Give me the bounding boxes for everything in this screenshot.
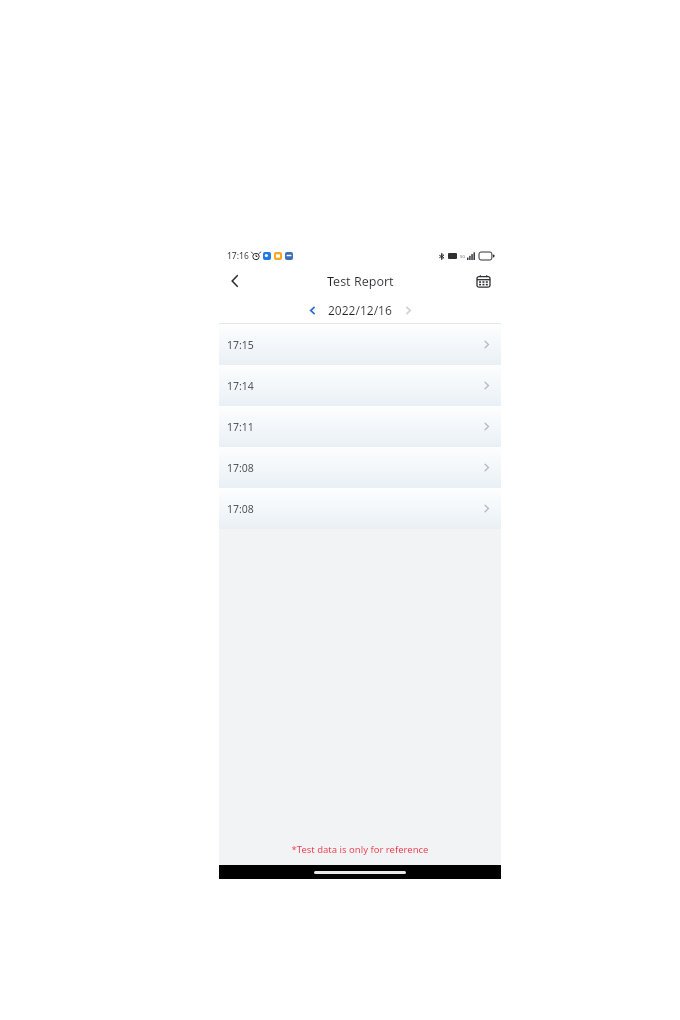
staticText: 17:11	[227, 420, 254, 434]
staticText: 17:08	[227, 461, 254, 475]
staticText: Test Report	[327, 273, 394, 290]
button[interactable]: 17:08	[219, 447, 501, 488]
staticText: 2022/12/16	[328, 302, 392, 318]
staticText: 17:15	[227, 338, 254, 352]
button[interactable]: 17:14	[219, 365, 501, 406]
button[interactable]: 17:11	[219, 406, 501, 447]
staticText: 17:16	[227, 250, 249, 262]
staticText: 17:14	[227, 379, 254, 393]
staticText: 5G	[460, 254, 466, 259]
button[interactable]: 17:08	[219, 488, 501, 529]
button[interactable]: Previous day	[302, 300, 322, 320]
button[interactable]: 17:15	[219, 324, 501, 365]
staticText: *Test data is only for reference	[219, 843, 501, 856]
button[interactable]: Back	[219, 265, 251, 297]
button[interactable]: Calendar	[471, 269, 495, 293]
staticText: 17:08	[227, 502, 254, 516]
button[interactable]: Next day	[398, 300, 418, 320]
